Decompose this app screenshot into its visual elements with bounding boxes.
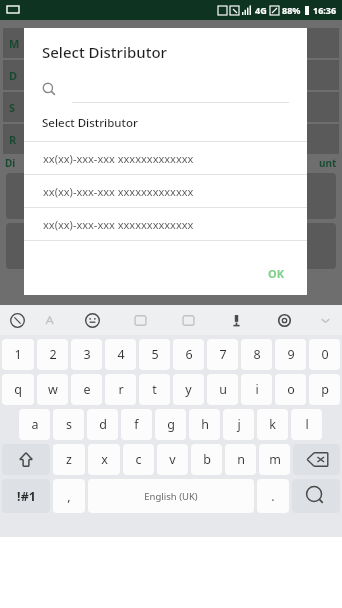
button[interactable]: f	[121, 409, 152, 440]
button[interactable]: q	[2, 374, 34, 405]
button[interactable]: 2	[37, 339, 68, 370]
button[interactable]: c	[123, 444, 154, 475]
button[interactable]: Text style	[34, 305, 68, 335]
button[interactable]: d	[87, 409, 118, 440]
staticText: m	[269, 451, 281, 468]
button[interactable]: Shift	[2, 444, 50, 475]
staticText: 4	[117, 346, 125, 363]
staticText: 88%	[282, 4, 301, 16]
button[interactable]: a	[19, 409, 50, 440]
button[interactable]: o	[275, 374, 306, 405]
button[interactable]: u	[207, 374, 238, 405]
staticText: 2	[49, 346, 57, 363]
button[interactable]: Emoji	[68, 305, 116, 335]
button[interactable]: 8	[241, 339, 272, 370]
button[interactable]: n	[225, 444, 256, 475]
button[interactable]: .	[257, 479, 289, 513]
other: Search	[42, 82, 56, 96]
button[interactable]: Search	[292, 479, 340, 513]
staticText: Select Distributor	[42, 115, 138, 131]
button[interactable]: w	[37, 374, 68, 405]
button[interactable]: s	[53, 409, 84, 440]
staticText: g	[167, 416, 175, 433]
button[interactable]: l	[291, 409, 322, 440]
staticText: M	[9, 36, 20, 51]
staticText: 16:36	[313, 4, 337, 16]
button[interactable]: xx(xx)-xxx-xxx xxxxxxxxxxxxx	[24, 142, 307, 174]
button[interactable]: 7	[207, 339, 238, 370]
staticText: 1	[14, 346, 22, 363]
button[interactable]: English (UK)	[88, 479, 254, 513]
button[interactable]: 4	[105, 339, 136, 370]
staticText: e	[83, 381, 91, 398]
staticText: xx(xx)-xxx-xxx xxxxxxxxxxxxx	[43, 217, 194, 232]
staticText: q	[14, 381, 22, 398]
button[interactable]: xx(xx)-xxx-xxx xxxxxxxxxxxxx	[24, 208, 307, 240]
staticText: n	[237, 451, 245, 468]
staticText: t	[152, 381, 157, 398]
staticText: x	[101, 451, 108, 468]
staticText: R	[9, 132, 17, 147]
button[interactable]: 0	[309, 339, 340, 370]
staticText: r	[118, 381, 124, 398]
staticText: 9	[287, 346, 295, 363]
button[interactable]: 9	[275, 339, 306, 370]
staticText: 0	[321, 346, 329, 363]
staticText: w	[48, 381, 58, 398]
staticText: s	[66, 416, 72, 433]
button[interactable]: i	[241, 374, 272, 405]
button[interactable]: 6	[173, 339, 204, 370]
button[interactable]: e	[71, 374, 102, 405]
staticText: English (UK)	[144, 490, 198, 503]
staticText: d	[99, 416, 107, 433]
staticText: 5	[151, 346, 159, 363]
staticText: y	[185, 381, 192, 398]
button[interactable]: Stickers	[116, 305, 164, 335]
button[interactable]: Search	[42, 76, 289, 102]
button[interactable]: y	[173, 374, 204, 405]
button[interactable]: r	[105, 374, 136, 405]
button[interactable]: 1	[2, 339, 34, 370]
button[interactable]: t	[139, 374, 170, 405]
button[interactable]: p	[309, 374, 340, 405]
button[interactable]: Translate	[0, 305, 34, 335]
staticText: u	[219, 381, 227, 398]
button[interactable]: Voice input	[212, 305, 260, 335]
button[interactable]: Collapse keyboard	[308, 305, 342, 335]
button[interactable]: x	[88, 444, 120, 475]
staticText: 6	[185, 346, 193, 363]
staticText: v	[169, 451, 176, 468]
button[interactable]: v	[157, 444, 188, 475]
staticText: xx(xx)-xxx-xxx xxxxxxxxxxxxx	[43, 151, 194, 166]
staticText: b	[203, 451, 211, 468]
button[interactable]: ,	[53, 479, 85, 513]
button[interactable]: Backspace	[293, 444, 340, 475]
button[interactable]: k	[257, 409, 288, 440]
staticText: k	[269, 416, 276, 433]
button[interactable]: g	[155, 409, 186, 440]
button[interactable]: !#1	[2, 479, 50, 513]
button[interactable]: h	[189, 409, 220, 440]
staticText: p	[321, 381, 329, 398]
button[interactable]: Settings	[260, 305, 308, 335]
staticText: OK	[268, 266, 285, 281]
staticText: 3	[83, 346, 91, 363]
staticText: l	[305, 416, 309, 433]
button[interactable]: 3	[71, 339, 102, 370]
staticText: i	[255, 381, 259, 398]
button[interactable]: z	[53, 444, 85, 475]
button[interactable]: GIF	[164, 305, 212, 335]
staticText: f	[134, 416, 139, 433]
staticText: ,	[67, 488, 71, 505]
button[interactable]: j	[223, 409, 254, 440]
staticText: S	[9, 100, 16, 115]
staticText: c	[135, 451, 142, 468]
button[interactable]: xx(xx)-xxx-xxx xxxxxxxxxxxxx	[24, 175, 307, 207]
button[interactable]: 5	[139, 339, 170, 370]
button[interactable]: OK	[260, 262, 293, 285]
staticText: o	[287, 381, 295, 398]
staticText: j	[237, 416, 241, 433]
button[interactable]: m	[259, 444, 290, 475]
button[interactable]: b	[191, 444, 222, 475]
staticText: h	[201, 416, 209, 433]
